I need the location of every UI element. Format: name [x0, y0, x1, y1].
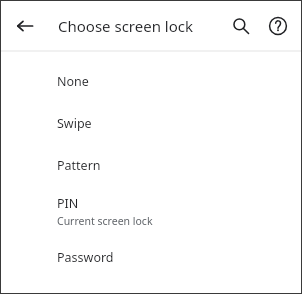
button[interactable]: Search [224, 9, 258, 43]
button[interactable]: Password [1, 236, 301, 278]
staticText: Current screen lock [57, 214, 153, 228]
staticText: Choose screen lock [58, 16, 224, 36]
staticText: Password [57, 249, 114, 266]
button[interactable]: Help [261, 9, 295, 43]
staticText: Swipe [57, 115, 92, 132]
staticText: PIN [57, 195, 79, 212]
button[interactable]: PIN [1, 186, 301, 236]
button[interactable]: None [1, 60, 301, 102]
button[interactable]: Pattern [1, 144, 301, 186]
staticText: None [57, 73, 89, 90]
button[interactable]: Back [6, 7, 44, 45]
staticText: Pattern [57, 157, 101, 174]
button[interactable]: Swipe [1, 102, 301, 144]
